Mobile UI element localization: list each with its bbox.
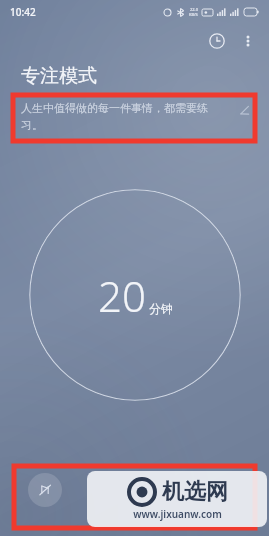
button[interactable]: 20 <box>29 189 241 401</box>
staticText: KB/S <box>189 12 198 17</box>
button[interactable]: Mute background sound <box>28 473 62 507</box>
staticText: 分钟 <box>149 301 173 316</box>
staticText: 专注模式 <box>21 64 97 88</box>
staticText: 10:42 <box>10 5 36 19</box>
staticText: 22.0 <box>190 7 198 12</box>
staticText: 人生中值得做的每一件事情，都需要练习。 <box>21 101 227 132</box>
staticText: 机选网 <box>162 478 228 506</box>
button[interactable]: More options <box>233 26 263 56</box>
button[interactable]: History <box>201 25 233 57</box>
staticText: www.jixuanw.com <box>133 507 222 521</box>
button[interactable]: 人生中值得做的每一件事情，都需要练习。 <box>21 97 255 132</box>
staticText: 20 <box>98 267 146 324</box>
